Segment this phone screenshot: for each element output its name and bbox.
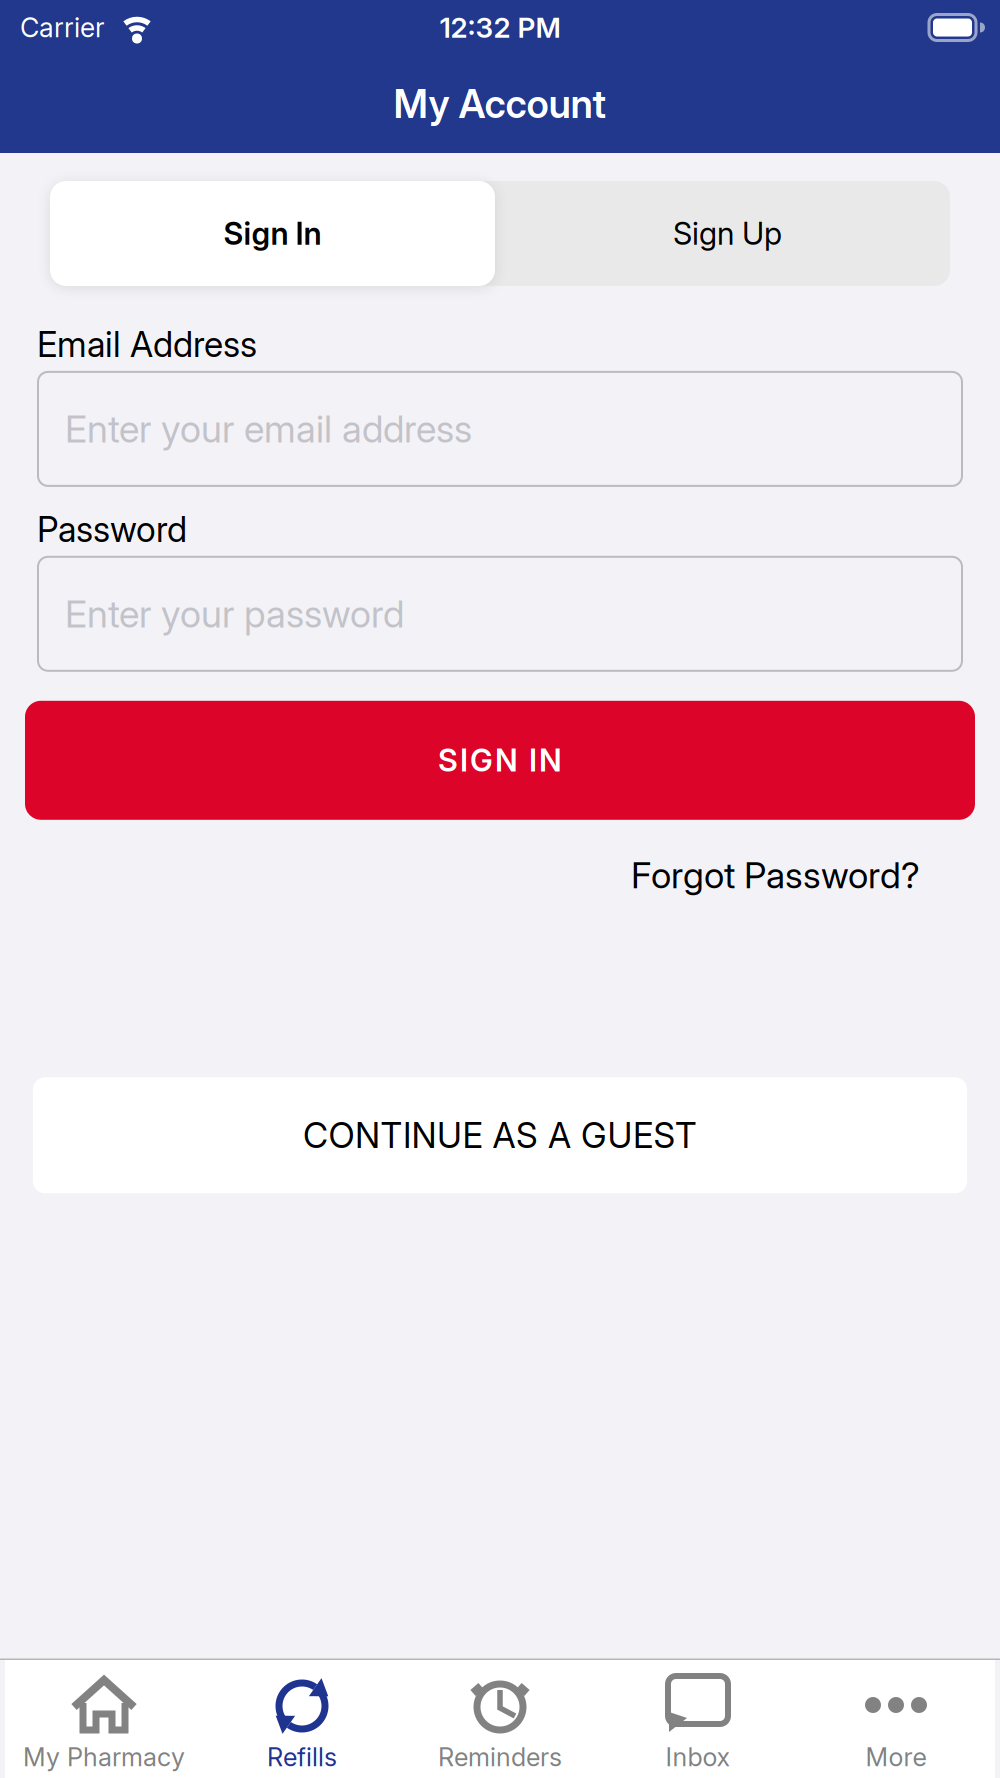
- button[interactable]: Inbox: [599, 1663, 797, 1775]
- button[interactable]: Sign Up: [505, 181, 950, 286]
- staticText: Reminders: [438, 1742, 562, 1772]
- button[interactable]: Forgot Password?: [631, 854, 920, 896]
- staticText: SIGN IN: [438, 742, 562, 778]
- button[interactable]: Sign In: [50, 181, 495, 286]
- staticText: 12:32 PM: [439, 11, 560, 44]
- staticText: Carrier: [20, 12, 105, 43]
- staticText: Enter your password: [65, 592, 404, 636]
- staticText: CONTINUE AS A GUEST: [303, 1115, 697, 1156]
- staticText: Email Address: [37, 324, 257, 365]
- staticText: Sign Up: [673, 215, 782, 252]
- staticText: Forgot Password?: [631, 854, 920, 896]
- button[interactable]: More: [797, 1663, 995, 1775]
- staticText: Sign In: [223, 215, 321, 252]
- staticText: More: [865, 1742, 926, 1772]
- staticText: Enter your email address: [65, 407, 472, 451]
- button[interactable]: My Pharmacy: [5, 1663, 203, 1775]
- staticText: Password: [37, 509, 187, 550]
- staticText: My Account: [393, 81, 606, 127]
- button[interactable]: CONTINUE AS A GUEST: [0, 1077, 1000, 1193]
- button[interactable]: SIGN IN: [0, 701, 1000, 820]
- staticText: Refills: [267, 1742, 337, 1772]
- button[interactable]: Refills: [203, 1663, 401, 1775]
- button[interactable]: Reminders: [401, 1663, 599, 1775]
- staticText: My Pharmacy: [23, 1742, 185, 1772]
- staticText: Inbox: [665, 1742, 730, 1772]
